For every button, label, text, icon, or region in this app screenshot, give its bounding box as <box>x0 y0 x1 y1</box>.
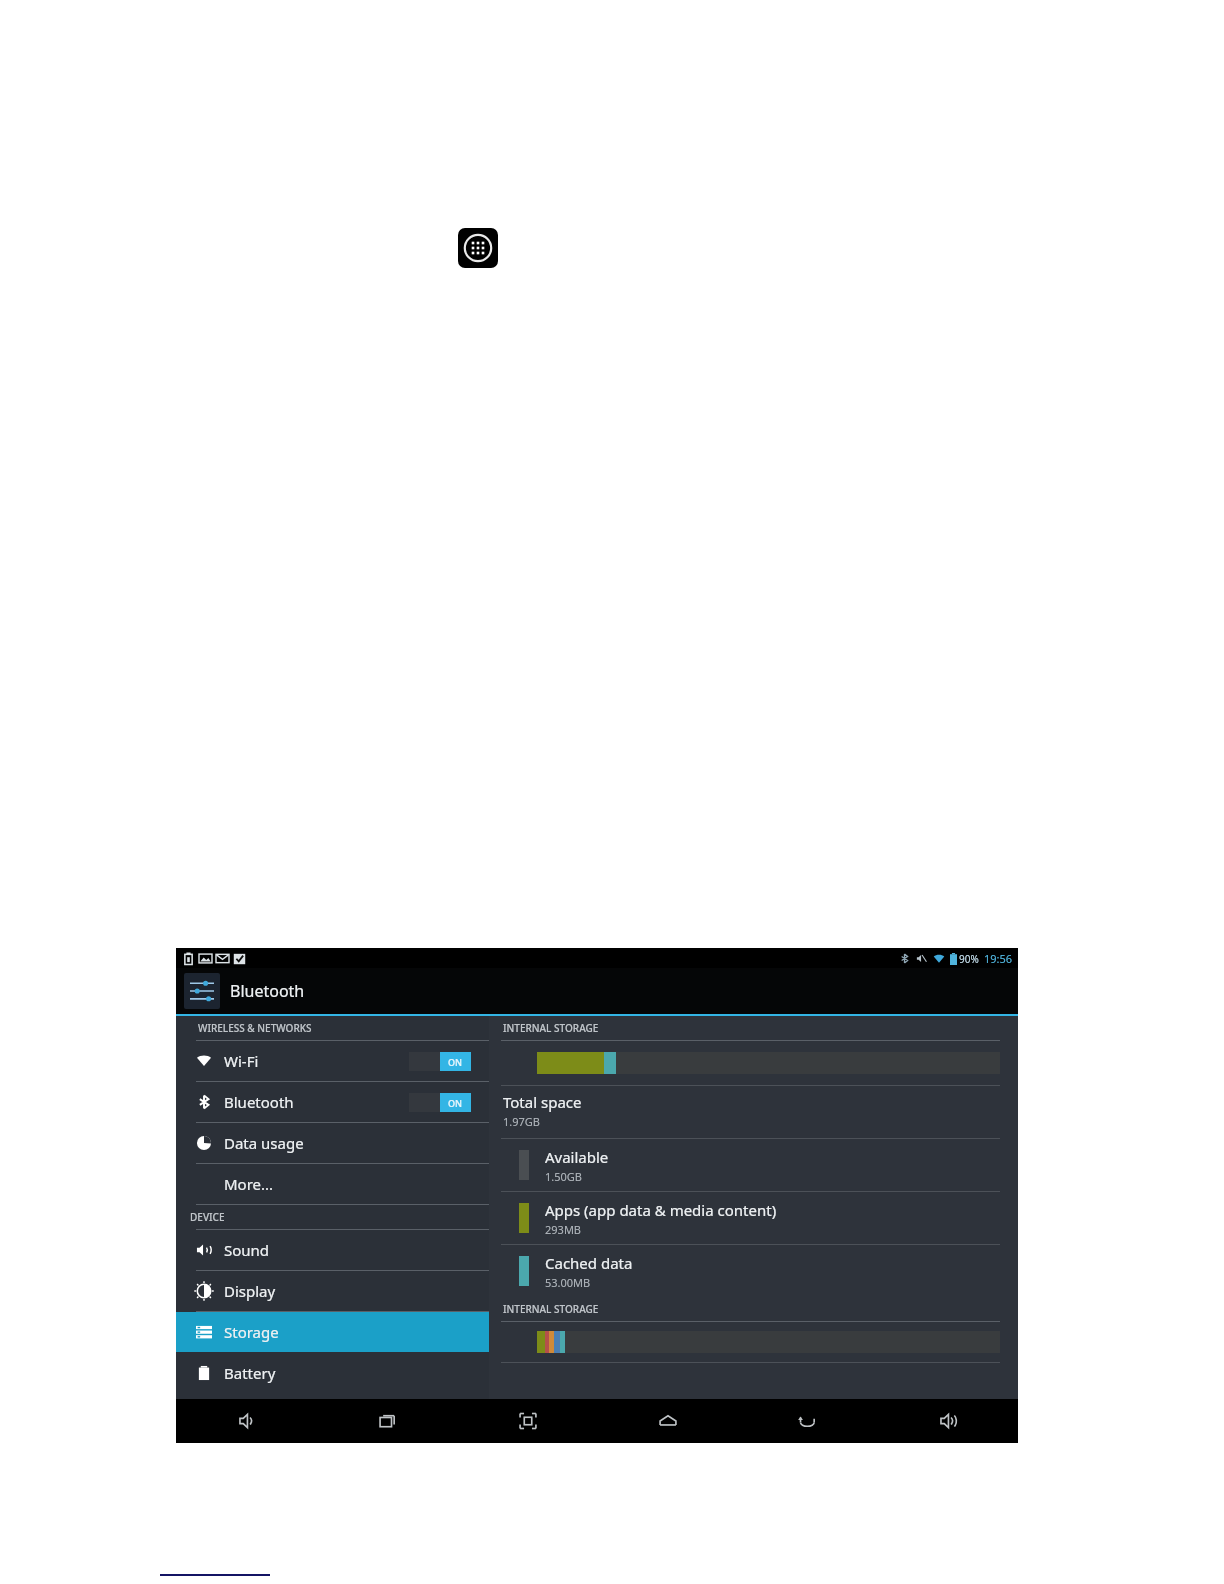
staticText: 1.50GB <box>545 1169 582 1184</box>
staticText: Bluetooth <box>230 980 305 1002</box>
staticText: INTERNAL STORAGE <box>503 1302 599 1316</box>
staticText: DEVICE <box>190 1210 225 1224</box>
button[interactable]: Display <box>176 1271 489 1311</box>
button[interactable]: Storage <box>176 1312 489 1352</box>
staticText: Display <box>224 1281 276 1301</box>
staticText: WIRELESS & NETWORKS <box>198 1021 312 1035</box>
staticText: Cached data <box>545 1253 633 1273</box>
staticText: 1.97GB <box>503 1114 540 1129</box>
staticText: Battery <box>224 1363 276 1383</box>
staticText: 293MB <box>545 1222 582 1237</box>
staticText: Bluetooth <box>224 1092 294 1112</box>
staticText: Data usage <box>224 1133 304 1153</box>
button[interactable]: Volume down <box>176 1399 317 1443</box>
staticText: 19:56 <box>984 951 1013 966</box>
button[interactable]: ON <box>409 1052 471 1071</box>
button[interactable]: Screenshot <box>458 1399 598 1443</box>
button[interactable]: Bluetooth <box>176 968 1018 1014</box>
button[interactable]: Volume up <box>878 1399 1018 1443</box>
button[interactable]: Sound <box>176 1230 489 1270</box>
button[interactable]: Available <box>489 1139 1018 1191</box>
staticText: ON <box>448 1097 463 1109</box>
staticText: 90% <box>959 952 979 966</box>
staticText: Available <box>545 1147 609 1167</box>
staticText: ON <box>448 1056 463 1068</box>
button[interactable]: More... <box>176 1164 489 1204</box>
button[interactable]: ON <box>409 1093 471 1112</box>
button[interactable]: Apps <box>458 228 498 268</box>
button[interactable]: Battery <box>176 1353 489 1393</box>
staticText: More... <box>224 1174 274 1194</box>
button[interactable]: Apps (app data & media content) <box>489 1192 1018 1244</box>
staticText: 53.00MB <box>545 1275 591 1290</box>
staticText: Apps (app data & media content) <box>545 1200 777 1220</box>
staticText: Sound <box>224 1240 270 1260</box>
button[interactable]: Wi-Fi <box>176 1041 489 1081</box>
button[interactable]: Back <box>738 1399 878 1443</box>
staticText: Total space <box>503 1092 582 1112</box>
button[interactable]: Data usage <box>176 1123 489 1163</box>
button[interactable]: Recent apps <box>317 1399 458 1443</box>
staticText: Storage <box>224 1322 279 1342</box>
staticText: Wi-Fi <box>224 1051 259 1071</box>
button[interactable]: Home <box>598 1399 738 1443</box>
staticText: INTERNAL STORAGE <box>503 1021 599 1035</box>
button[interactable]: Cached data <box>489 1245 1018 1297</box>
button[interactable]: Bluetooth <box>176 1082 489 1122</box>
button[interactable]: Total space <box>489 1086 1018 1138</box>
